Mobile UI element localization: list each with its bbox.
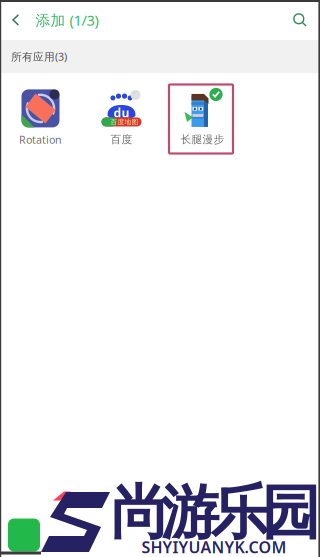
button[interactable]: Rotation xyxy=(0,90,81,146)
staticText: Rotation xyxy=(19,132,62,147)
staticText: 尚 xyxy=(110,477,169,549)
button[interactable]: du xyxy=(81,90,162,146)
staticText: 游 xyxy=(160,477,219,549)
staticText: 所有应用(3) xyxy=(11,49,67,64)
staticText: du xyxy=(113,105,129,121)
staticText: 长腿漫步 xyxy=(180,133,224,146)
staticText: 园 xyxy=(261,477,320,549)
button[interactable]: 长腿漫步 xyxy=(162,90,243,146)
button[interactable]: 添加 (1/3) xyxy=(0,0,108,40)
staticText: 乐 xyxy=(210,477,269,549)
staticText: 百度 xyxy=(110,133,132,146)
staticText: SHYIYUANYK.COM xyxy=(141,536,286,557)
staticText: 百度地图 xyxy=(110,118,138,126)
button[interactable]: Search xyxy=(279,0,320,40)
staticText: 添加 (1/3) xyxy=(35,10,98,30)
